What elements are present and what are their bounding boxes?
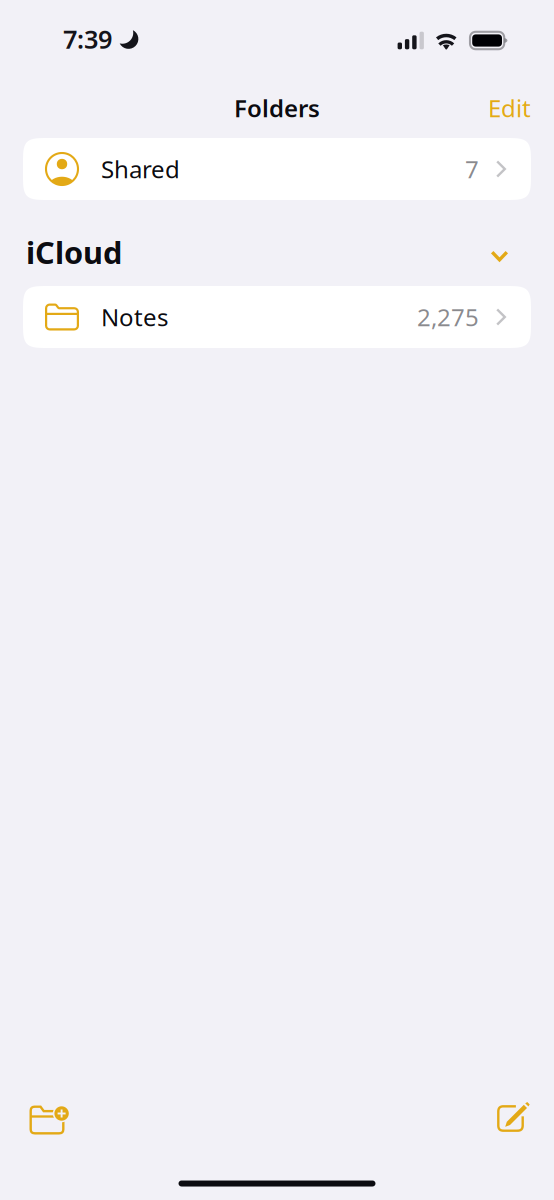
staticText: 7:39 bbox=[63, 22, 112, 56]
staticText: Shared bbox=[101, 153, 180, 185]
staticText: Folders bbox=[234, 92, 320, 124]
staticText: Edit bbox=[488, 92, 531, 124]
button[interactable]: Notes bbox=[23, 286, 531, 348]
button[interactable]: New Note bbox=[482, 1095, 546, 1145]
button[interactable]: Shared bbox=[23, 138, 531, 200]
staticText: iCloud bbox=[26, 232, 122, 272]
staticText: Notes bbox=[101, 301, 168, 333]
staticText: 2,275 bbox=[417, 301, 479, 333]
staticText: 7 bbox=[465, 153, 479, 185]
button[interactable]: Collapse iCloud bbox=[477, 221, 521, 265]
button[interactable]: New Folder bbox=[18, 1095, 82, 1145]
button[interactable]: Edit bbox=[472, 84, 531, 132]
